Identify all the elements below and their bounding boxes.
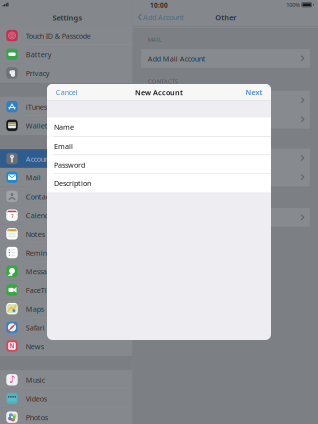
- button[interactable]: Accounts & Passwords: [0, 149, 132, 168]
- button[interactable]: 7: [0, 206, 132, 224]
- button[interactable]: Videos: [0, 389, 132, 408]
- staticText: News: [26, 341, 44, 351]
- staticText: Messages: [26, 267, 58, 276]
- staticText: Add Account: [143, 12, 184, 22]
- staticText: Next: [246, 87, 263, 97]
- button[interactable]: Add Mail Account: [141, 49, 310, 68]
- staticText: Other: [215, 12, 236, 22]
- button[interactable]: Maps: [0, 299, 132, 318]
- staticText: Videos: [26, 394, 47, 404]
- button[interactable]: Touch ID & Passcode: [0, 26, 132, 45]
- staticText: 10:00: [150, 1, 168, 10]
- staticText: Safari: [26, 323, 45, 332]
- button[interactable]: Contacts: [0, 187, 132, 206]
- staticText: Cancel: [56, 87, 78, 97]
- staticText: Accounts & Passwords: [26, 154, 98, 164]
- button[interactable]: Password: [47, 155, 271, 174]
- staticText: Music: [26, 375, 45, 385]
- staticText: FaceTime: [26, 285, 58, 295]
- staticText: Settings: [52, 12, 82, 23]
- staticText: CONTACTS: [148, 77, 178, 85]
- button[interactable]: Description: [47, 174, 271, 192]
- staticText: Battery: [26, 50, 52, 59]
- button[interactable]: ♪: [0, 370, 132, 389]
- staticText: Reminders: [26, 248, 61, 258]
- button[interactable]: Safari: [0, 318, 132, 337]
- button[interactable]: Wallet & Apple Pay: [0, 116, 132, 135]
- staticText: Password: [54, 160, 85, 170]
- button[interactable]: Reminders: [0, 243, 132, 262]
- button[interactable]: Privacy: [0, 64, 132, 82]
- staticText: MAIL: [148, 35, 162, 43]
- staticText: Touch ID & Passcode: [26, 31, 91, 41]
- button[interactable]: Add Subscribed Calendar: [141, 168, 310, 186]
- button[interactable]: Messages: [0, 262, 132, 281]
- button[interactable]: Add Account: [132, 9, 188, 26]
- staticText: CALENDARS: [148, 135, 181, 143]
- staticText: New Account: [135, 88, 183, 97]
- button[interactable]: Cancel: [47, 84, 84, 100]
- staticText: Calendar: [26, 210, 56, 220]
- staticText: Mail: [26, 173, 41, 182]
- staticText: Add Subscribed Calendar: [148, 172, 230, 182]
- button[interactable]: Add CardDAV Account: [141, 110, 310, 129]
- staticText: Add CalDAV Account: [148, 153, 215, 163]
- button[interactable]: Mail: [0, 168, 132, 187]
- staticText: Wallet & Apple Pay: [26, 121, 90, 130]
- staticText: Contacts: [26, 192, 55, 202]
- button[interactable]: iTunes & App Store: [0, 97, 132, 116]
- button[interactable]: Email: [47, 136, 271, 155]
- button[interactable]: Notes: [0, 224, 132, 243]
- button[interactable]: Name: [47, 117, 271, 136]
- button[interactable]: Add macOS Server Account: [141, 208, 310, 227]
- staticText: Add Mail Account: [148, 54, 206, 63]
- staticText: Email: [54, 141, 73, 151]
- button[interactable]: Add LDAP Account: [141, 91, 310, 109]
- button[interactable]: N: [0, 337, 132, 355]
- button[interactable]: Battery: [0, 45, 132, 64]
- staticText: 7: [10, 212, 13, 220]
- button[interactable]: Photos: [0, 408, 132, 424]
- staticText: iTunes & App Store: [26, 102, 89, 112]
- staticText: Name: [54, 122, 74, 132]
- button[interactable]: Add CalDAV Account: [141, 148, 310, 167]
- staticText: Maps: [26, 304, 44, 314]
- staticText: 100%: [286, 1, 300, 9]
- staticText: Notes: [26, 229, 45, 239]
- staticText: Photos: [26, 412, 48, 422]
- staticText: Description: [54, 178, 91, 188]
- staticText: ♪: [9, 374, 15, 385]
- staticText: N: [9, 342, 14, 350]
- staticText: Add CardDAV Account: [148, 115, 220, 124]
- button[interactable]: Next: [240, 84, 271, 100]
- staticText: Privacy: [26, 68, 50, 78]
- button[interactable]: FaceTime: [0, 281, 132, 299]
- staticText: Add LDAP Account: [148, 95, 209, 105]
